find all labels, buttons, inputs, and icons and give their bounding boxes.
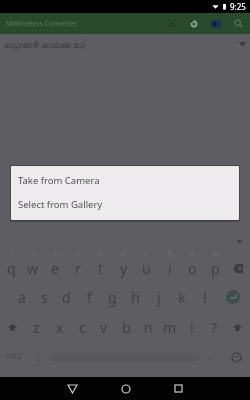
button[interactable]: Emoji: [222, 342, 250, 372]
button[interactable]: b: [115, 312, 137, 342]
staticText: 8: [168, 250, 171, 257]
button[interactable]: 3: [44, 252, 66, 282]
button[interactable]: Enter: [216, 282, 250, 312]
button[interactable]: m: [159, 312, 181, 342]
staticText: j: [157, 288, 161, 307]
staticText: p: [211, 259, 220, 278]
staticText: l: [203, 288, 207, 307]
button[interactable]: d: [55, 282, 78, 312]
button[interactable]: ?: [203, 312, 225, 342]
staticText: x: [56, 318, 64, 337]
button[interactable]: Shift: [225, 312, 250, 342]
button[interactable]: Search: [227, 13, 249, 34]
staticText: r: [75, 259, 81, 278]
staticText: b: [122, 318, 131, 337]
button[interactable]: Recents: [152, 377, 205, 400]
button[interactable]: f: [78, 282, 101, 312]
staticText: Select from Gallery: [18, 198, 103, 211]
button[interactable]: z: [25, 312, 48, 342]
button[interactable]: Camera: [183, 13, 205, 34]
button[interactable]: a: [11, 282, 33, 312]
button[interactable]: Backspace: [227, 252, 250, 282]
button[interactable]: s: [33, 282, 55, 312]
button[interactable]: l: [193, 282, 216, 312]
button[interactable]: 7: [135, 252, 158, 282]
button[interactable]: n: [137, 312, 159, 342]
staticText: 5: [99, 250, 102, 257]
button[interactable]: j: [147, 282, 170, 312]
staticText: o: [188, 259, 197, 278]
staticText: 6: [122, 250, 125, 257]
staticText: a: [18, 288, 26, 307]
staticText: c: [79, 318, 86, 337]
staticText: !: [190, 318, 194, 337]
staticText: പ്രെഷൻ കാമക്കു മാ: [4, 38, 83, 50]
staticText: .: [209, 347, 213, 363]
staticText: h: [131, 288, 140, 307]
button[interactable]: v: [93, 312, 115, 342]
staticText: ?: [211, 318, 218, 337]
button[interactable]: Take from Camera: [11, 167, 239, 193]
staticText: f: [87, 288, 92, 307]
staticText: Millimeters Converter: [6, 19, 78, 29]
button[interactable]: Photo: [205, 13, 227, 34]
button[interactable]: Select from Gallery: [11, 191, 239, 217]
staticText: q: [7, 259, 16, 278]
button[interactable]: 2: [22, 252, 44, 282]
button[interactable]: Translate: [161, 13, 183, 34]
staticText: Take from Camera: [18, 174, 100, 187]
staticText: v: [100, 318, 108, 337]
staticText: 3: [54, 250, 57, 257]
button[interactable]: 1: [0, 252, 22, 282]
staticText: ?123: [6, 352, 22, 362]
staticText: 1: [10, 250, 13, 257]
staticText: m: [163, 318, 177, 337]
staticText: 9:25: [230, 1, 246, 12]
button[interactable]: x: [48, 312, 71, 342]
staticText: k: [178, 288, 186, 307]
staticText: ,: [37, 347, 41, 363]
button[interactable]: k: [170, 282, 193, 312]
button[interactable]: 9: [181, 252, 204, 282]
staticText: i: [168, 259, 172, 278]
staticText: u: [142, 259, 151, 278]
staticText: w: [27, 259, 39, 278]
staticText: 7: [145, 250, 148, 257]
button[interactable]: c: [71, 312, 93, 342]
button[interactable]: h: [124, 282, 147, 312]
button[interactable]: 4: [66, 252, 89, 282]
staticText: 4: [76, 250, 79, 257]
button[interactable]: 6: [112, 252, 135, 282]
button[interactable]: Home: [99, 377, 152, 400]
button[interactable]: 8: [158, 252, 181, 282]
staticText: d: [62, 288, 71, 307]
staticText: z: [33, 318, 40, 337]
staticText: 2: [32, 250, 35, 257]
staticText: n: [144, 318, 153, 337]
staticText: g: [108, 288, 117, 307]
staticText: y: [120, 259, 128, 278]
staticText: e: [51, 259, 59, 278]
staticText: 0: [214, 250, 217, 257]
staticText: 9: [191, 250, 194, 257]
button[interactable]: Back: [46, 377, 99, 400]
staticText: s: [41, 288, 48, 307]
button[interactable]: Shift: [0, 312, 25, 342]
staticText: t: [98, 259, 104, 278]
button[interactable]: 0: [204, 252, 227, 282]
button[interactable]: 5: [89, 252, 112, 282]
button[interactable]: g: [101, 282, 124, 312]
